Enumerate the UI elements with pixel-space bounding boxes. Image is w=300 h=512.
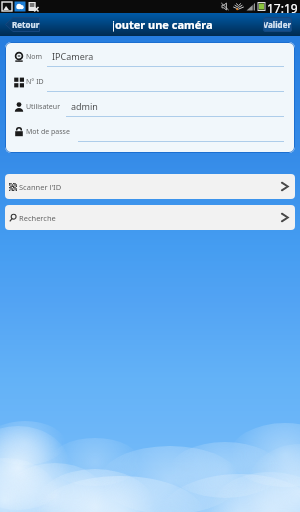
staticText: admin xyxy=(71,100,98,112)
staticText: Valider xyxy=(263,19,292,30)
staticText: Recherche xyxy=(19,213,56,223)
button[interactable]: Retour xyxy=(5,17,40,32)
staticText: 17:19 xyxy=(267,0,298,13)
staticText: Retour xyxy=(12,19,40,30)
staticText: Mot de passe xyxy=(26,127,70,137)
staticText: Utilisateur xyxy=(26,102,61,112)
button[interactable]: Scanner l'ID xyxy=(5,174,295,199)
button[interactable]: Recherche xyxy=(5,205,295,230)
staticText: Scanner l'ID xyxy=(19,182,62,192)
staticText: Ajouter une caméra xyxy=(113,17,213,32)
staticText: IPCamera xyxy=(52,50,94,62)
button[interactable]: Valider xyxy=(263,17,292,32)
staticText: Nom xyxy=(26,52,43,62)
staticText: N° ID xyxy=(26,77,44,87)
